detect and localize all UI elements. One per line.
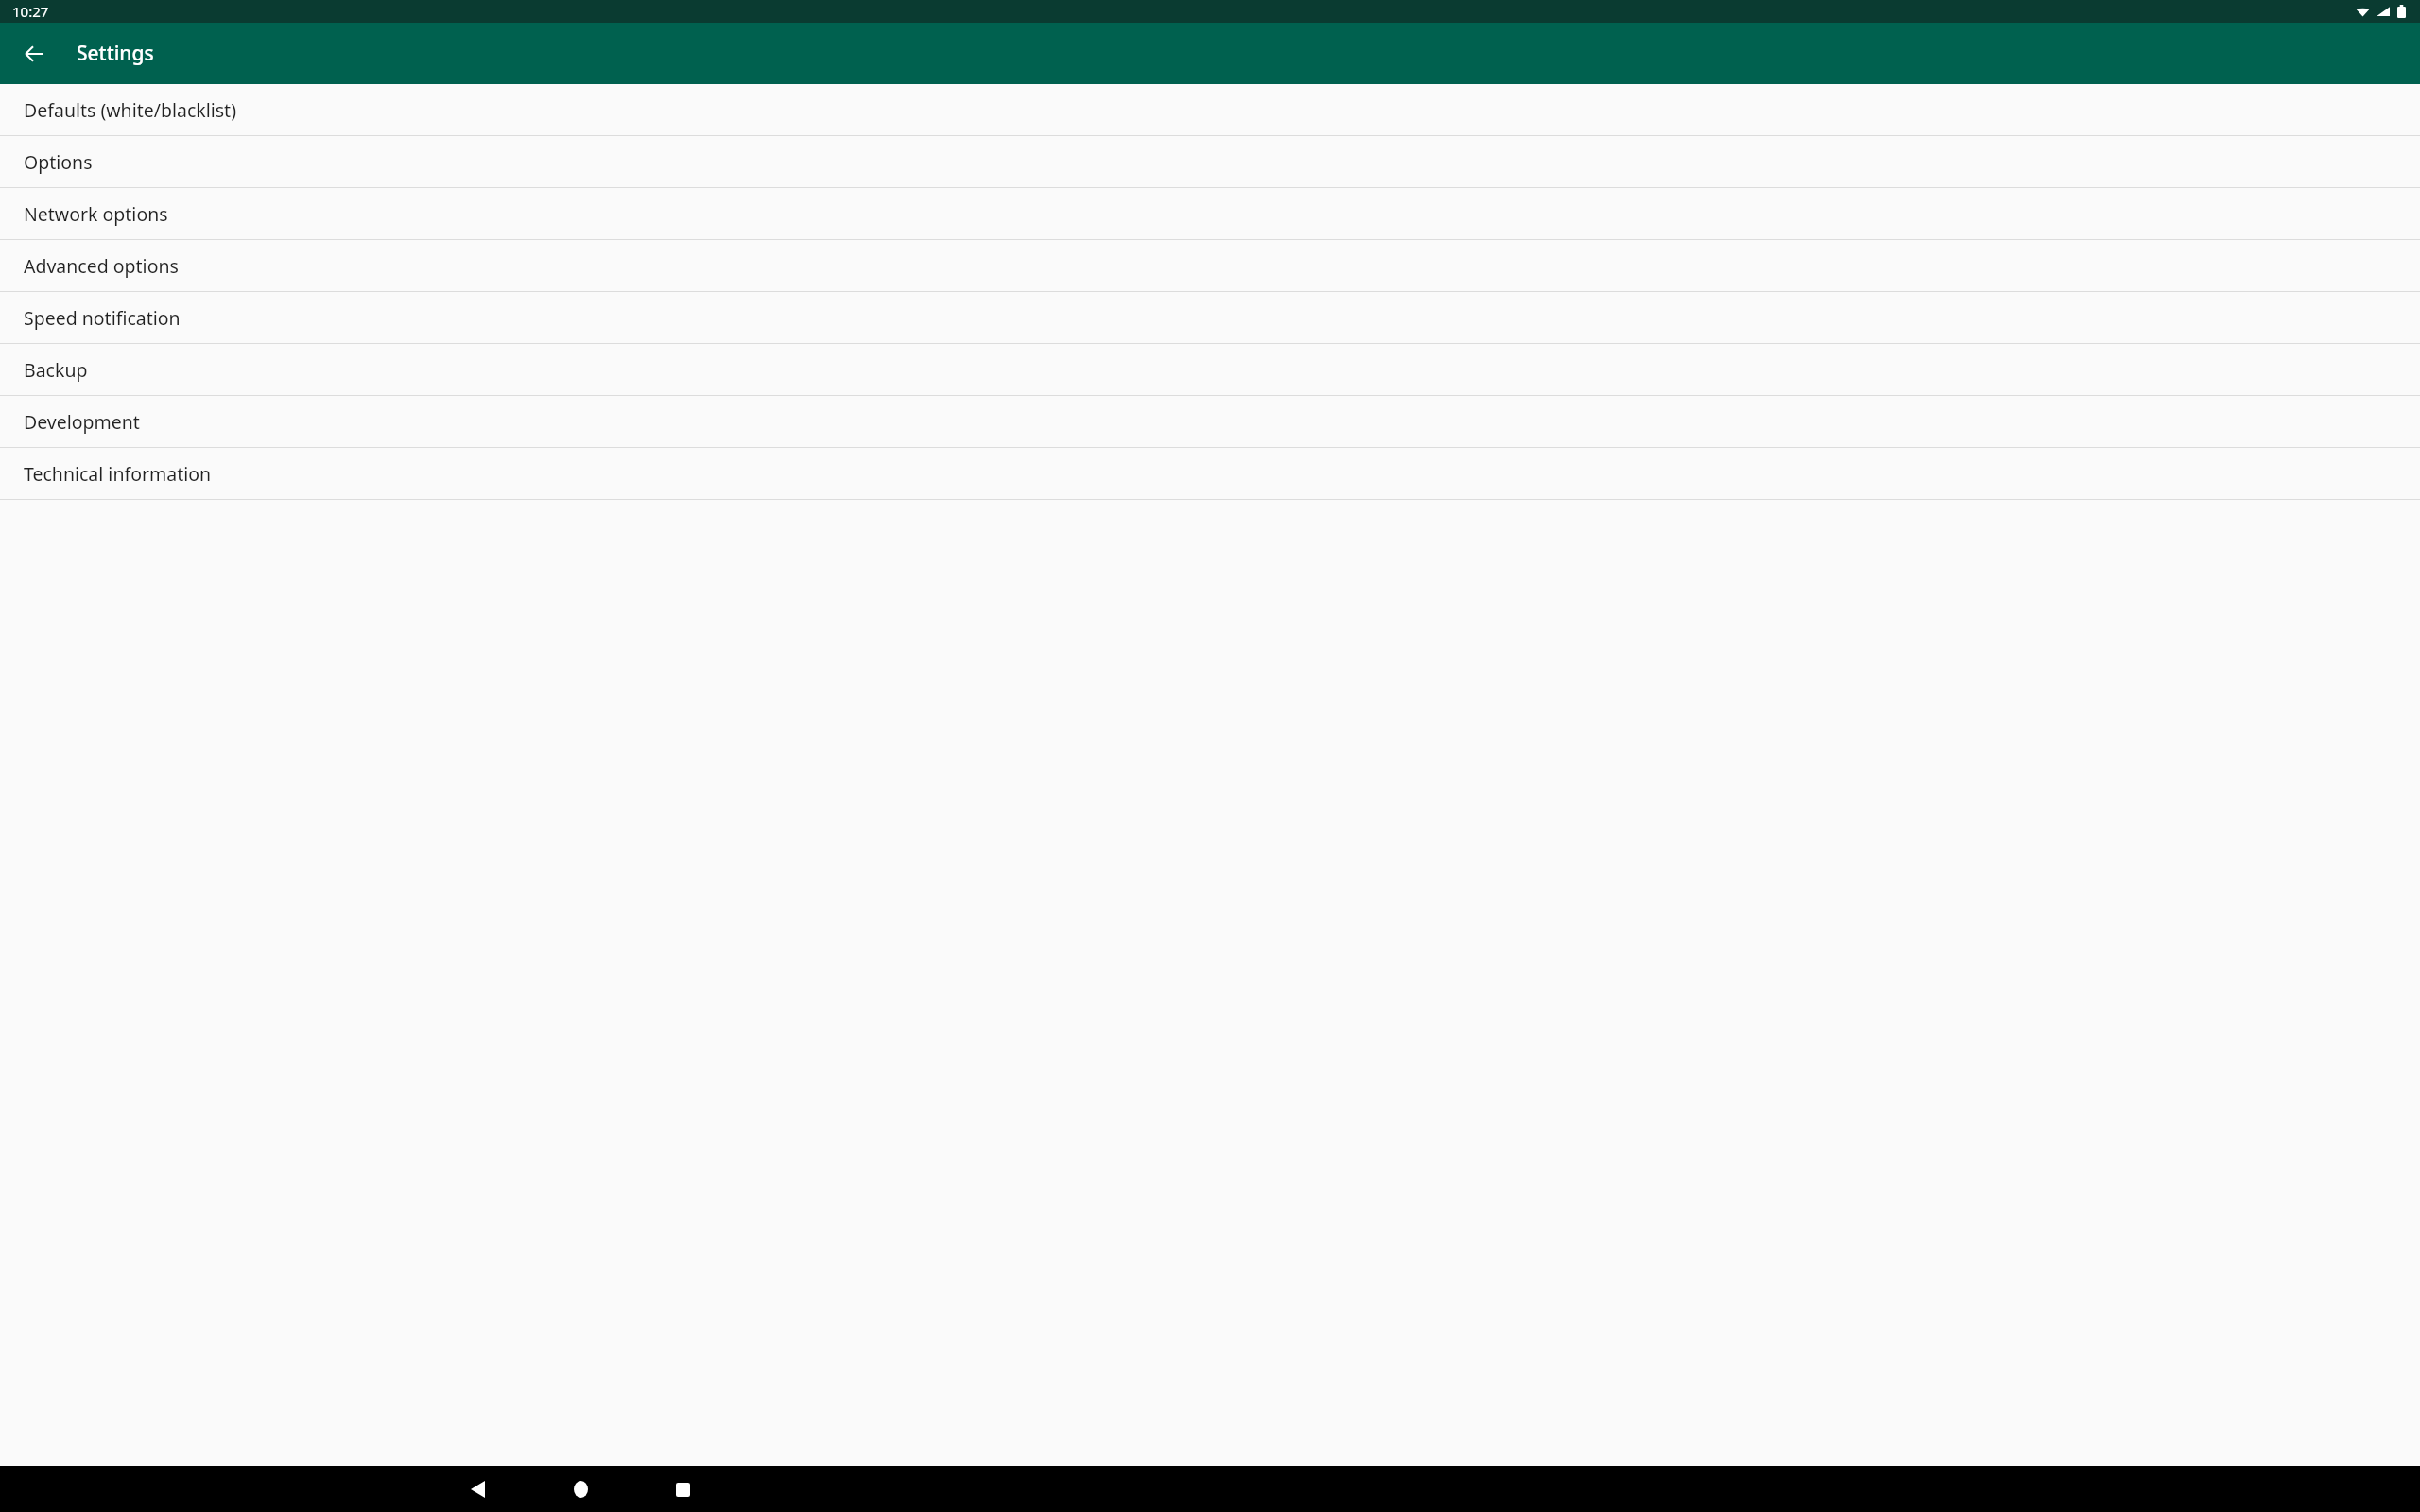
staticText: Options [24,149,93,175]
staticText: Technical information [24,461,212,487]
button[interactable]: Recent apps [660,1467,705,1512]
button[interactable]: Backup [0,344,2420,395]
button[interactable]: Defaults (white/blacklist) [0,84,2420,135]
button[interactable]: Back [455,1467,500,1512]
button[interactable]: Home [558,1467,603,1512]
button[interactable]: Back [11,31,57,77]
button[interactable]: Technical information [0,448,2420,499]
staticText: Development [24,409,140,435]
button[interactable]: Advanced options [0,240,2420,291]
button[interactable]: Development [0,396,2420,447]
staticText: 10:27 [12,2,49,21]
staticText: Speed notification [24,305,181,331]
staticText: Defaults (white/blacklist) [24,97,236,123]
button[interactable]: Network options [0,188,2420,239]
staticText: Settings [77,40,154,67]
staticText: Advanced options [24,253,179,279]
button[interactable]: Speed notification [0,292,2420,343]
staticText: Network options [24,201,168,227]
button[interactable]: Options [0,136,2420,187]
staticText: Backup [24,357,88,383]
